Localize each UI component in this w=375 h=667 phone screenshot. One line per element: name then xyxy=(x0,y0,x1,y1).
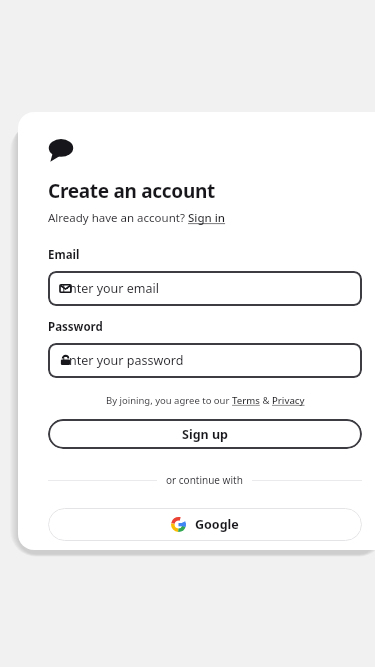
staticText: Enter your email xyxy=(62,280,159,297)
staticText: By joining, you agree to our xyxy=(106,394,232,407)
staticText: Already have an account? xyxy=(48,210,188,226)
button[interactable]: Terms xyxy=(232,394,260,407)
staticText: Sign up xyxy=(182,426,228,443)
staticText: Create an account xyxy=(48,178,215,204)
button[interactable]: Sign in xyxy=(188,210,226,226)
other: Logo xyxy=(48,137,74,163)
staticText: Enter your password xyxy=(62,352,184,369)
staticText: Google xyxy=(195,516,239,533)
staticText: or continue with xyxy=(166,473,243,487)
staticText: Password xyxy=(48,319,103,335)
staticText: Privacy xyxy=(272,394,305,407)
button[interactable]: Privacy xyxy=(272,394,305,407)
button[interactable]: Sign up xyxy=(48,419,362,449)
button[interactable]: Email input xyxy=(48,271,362,306)
staticText: Email xyxy=(48,247,80,263)
staticText: & xyxy=(260,394,272,407)
button[interactable]: Google xyxy=(48,508,362,541)
button[interactable]: Password input xyxy=(48,343,362,378)
staticText: Terms xyxy=(232,394,260,407)
staticText: Sign in xyxy=(188,210,226,226)
